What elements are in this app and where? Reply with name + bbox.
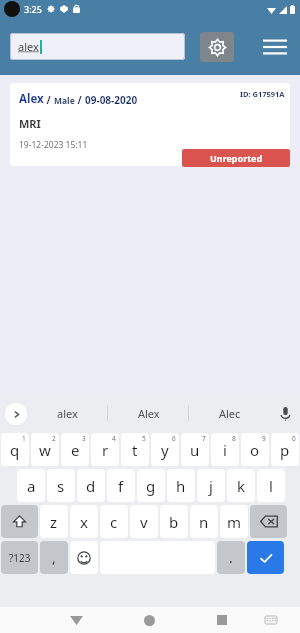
button[interactable]: k [227,469,255,502]
button[interactable]: Expand suggestions [5,403,27,425]
button[interactable]: n [190,505,218,538]
staticText: a [27,476,36,496]
staticText: ?123 [9,551,31,565]
staticText: x [80,512,88,532]
button[interactable]: p [271,433,299,466]
staticText: c [110,512,118,532]
staticText: r [102,440,109,460]
button[interactable]: h [167,469,195,502]
button[interactable]: Alec [189,397,270,430]
button[interactable]: Recents [209,607,235,633]
button[interactable]: r [91,433,119,466]
staticText: t [132,440,138,460]
button[interactable]: Alex [108,397,189,430]
staticText: alex [18,39,39,54]
button[interactable]: m [220,505,248,538]
button[interactable]: Back [63,607,89,633]
staticText: e [71,440,80,460]
staticText: / [44,93,54,107]
staticText: 2 [52,434,56,443]
staticText: ID: G17591A [240,89,285,99]
staticText: y [161,440,169,460]
button[interactable]: Unreported [182,149,290,167]
button[interactable]: Settings [200,32,234,62]
button[interactable]: alex [27,397,108,430]
staticText: Alex [138,406,160,421]
button[interactable]: e [61,433,89,466]
staticText: Unreported [210,152,263,164]
button[interactable]: Home [136,607,162,633]
button[interactable]: a [17,469,45,502]
staticText: m [227,512,242,532]
staticText: l [269,476,273,496]
staticText: 19-12-2023 15:11 [19,139,88,151]
button[interactable]: , [40,541,68,574]
button[interactable]: Emoji [70,541,98,574]
staticText: i [223,440,227,460]
button[interactable]: f [107,469,135,502]
staticText: d [86,476,96,496]
button[interactable]: i [211,433,239,466]
staticText: MRI [19,116,41,131]
staticText: f [118,476,124,496]
staticText: 1 [22,434,26,443]
staticText: h [176,476,186,496]
staticText: 6 [172,434,176,443]
staticText: Alex [19,91,44,107]
staticText: 4 [112,434,116,443]
button[interactable]: ?123 [1,541,38,574]
staticText: , [52,548,56,567]
button[interactable]: c [100,505,128,538]
button[interactable]: j [197,469,225,502]
staticText: u [190,440,200,460]
button[interactable]: u [181,433,209,466]
button[interactable]: Alex [10,83,290,166]
staticText: p [280,440,290,460]
button[interactable]: alex [10,33,185,60]
button[interactable]: Menu [260,32,290,62]
staticText: / [75,93,85,107]
staticText: s [57,476,65,496]
staticText: 3 [82,434,86,443]
staticText: o [250,440,260,460]
staticText: z [50,512,58,532]
button[interactable]: l [257,469,285,502]
button[interactable]: . [217,541,245,574]
staticText: 3:25 [24,3,42,15]
button[interactable]: d [77,469,105,502]
staticText: n [199,512,209,532]
staticText: b [169,512,179,532]
staticText: 5 [142,434,146,443]
button[interactable]: Voice input [270,397,300,430]
button[interactable]: q [1,433,29,466]
button[interactable]: x [70,505,98,538]
staticText: g [146,476,156,496]
button[interactable]: Keyboard switcher [258,607,284,633]
button[interactable]: z [40,505,68,538]
staticText: alex [57,406,78,421]
button[interactable]: w [31,433,59,466]
button[interactable]: s [47,469,75,502]
staticText: w [39,440,51,460]
staticText: . [229,548,233,567]
button[interactable]: Backspace [250,505,287,538]
button[interactable]: b [160,505,188,538]
button[interactable]: v [130,505,158,538]
staticText: k [237,476,246,496]
button[interactable]: o [241,433,269,466]
staticText: v [140,512,148,532]
staticText: 8 [232,434,236,443]
staticText: q [10,440,20,460]
staticText: Alec [219,406,241,421]
button[interactable]: t [121,433,149,466]
button[interactable]: Shift [1,505,38,538]
button[interactable]: Enter [247,541,284,574]
staticText: 0 [292,434,296,443]
staticText: Male [54,95,75,107]
staticText: j [209,476,213,496]
staticText: 9 [262,434,266,443]
staticText: 7 [202,434,206,443]
button[interactable]: y [151,433,179,466]
button[interactable]: g [137,469,165,502]
